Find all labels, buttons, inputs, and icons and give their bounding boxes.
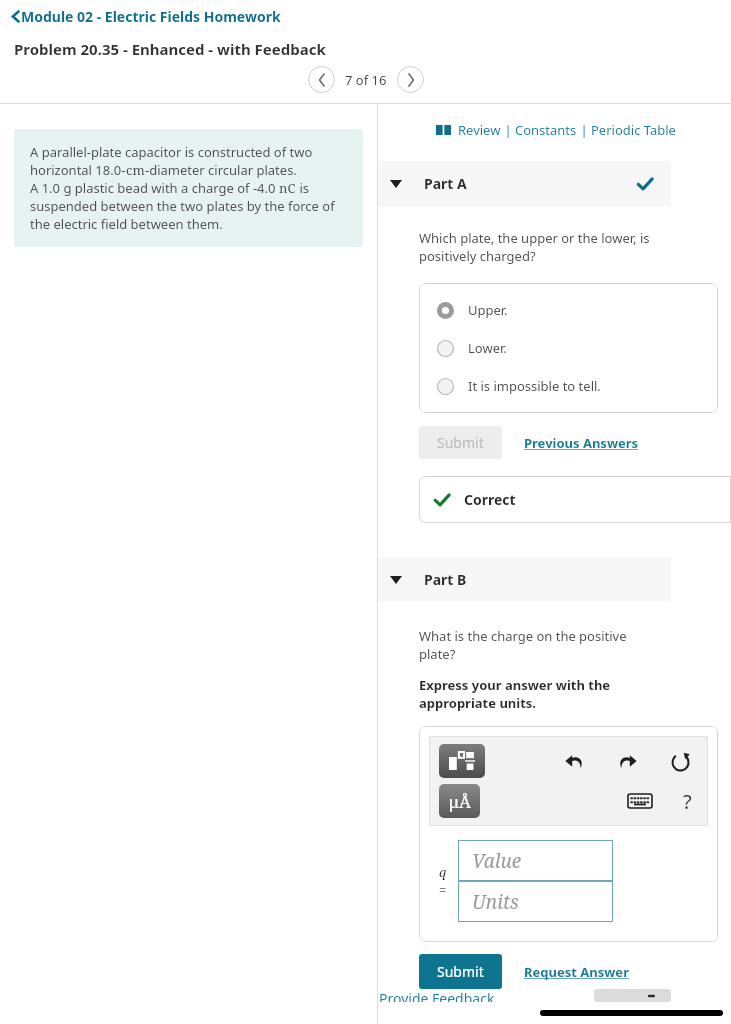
staticText: Part A (424, 174, 467, 193)
staticText: μÅ (449, 790, 471, 813)
button[interactable]: Module 02 - Electric Fields Homework (10, 7, 281, 26)
button[interactable]: Constants (515, 121, 577, 139)
button[interactable]: ? (683, 788, 692, 815)
other: Review (436, 124, 451, 136)
staticText: Constants (515, 121, 577, 139)
staticText: | (577, 121, 591, 139)
staticText: Express your answer with the (419, 676, 611, 694)
button[interactable]: Part A (378, 161, 671, 206)
staticText: = (439, 881, 447, 899)
button[interactable]: Previous problem (308, 66, 335, 93)
staticText: Module 02 - Electric Fields Homework (21, 7, 281, 26)
staticText: Review (458, 121, 501, 139)
button[interactable]: Units (458, 881, 613, 922)
button[interactable]: Request Answer (524, 963, 629, 981)
button[interactable]: Reset (668, 749, 692, 773)
button[interactable]: Redo (616, 750, 638, 772)
staticText: Correct (464, 490, 516, 509)
button[interactable]: Submit (419, 426, 502, 459)
staticText: Units (472, 889, 519, 915)
staticText: positively charged? (419, 247, 536, 265)
staticText: It is impossible to tell. (468, 377, 601, 395)
button[interactable]: Part B (378, 557, 671, 602)
staticText: is (296, 179, 309, 197)
staticText: Provide Feedback (379, 989, 495, 1002)
button[interactable]: Keyboard (627, 792, 653, 810)
button[interactable]: Next problem (397, 66, 424, 93)
button[interactable]: Periodic Table (591, 121, 676, 139)
button[interactable]: Review (458, 121, 501, 139)
button[interactable]: Upper. (419, 297, 718, 323)
staticText: 7 of 16 (345, 71, 387, 89)
staticText: the electric field between them. (30, 215, 223, 233)
staticText: cm (126, 161, 145, 179)
staticText: horizontal 18.0- (30, 161, 126, 179)
button[interactable]: Value (458, 840, 613, 881)
button[interactable]: Submit (419, 954, 502, 989)
staticText: Value (472, 848, 522, 874)
button[interactable]: Undo (564, 750, 586, 772)
staticText: nC (279, 179, 296, 197)
staticText: appropriate units. (419, 694, 536, 712)
staticText: Submit (437, 433, 484, 452)
staticText: A 1.0 g plastic bead with a charge of -4… (30, 179, 279, 197)
button[interactable]: It is impossible to tell. (419, 373, 718, 399)
staticText: Previous Answers (524, 434, 639, 452)
button[interactable]: Provide Feedback (379, 989, 495, 1002)
staticText: Upper. (468, 301, 508, 319)
staticText: suspended between the two plates by the … (30, 197, 335, 215)
staticText: q (439, 863, 447, 881)
staticText: Lower. (468, 339, 507, 357)
staticText: | (501, 121, 515, 139)
staticText: A parallel-plate capacitor is constructe… (30, 143, 313, 161)
staticText: Periodic Table (591, 121, 676, 139)
staticText: Problem 20.35 - Enhanced - with Feedback (14, 39, 326, 59)
button[interactable]: Lower. (419, 335, 718, 361)
staticText: Part B (424, 570, 467, 589)
button[interactable]: Next (594, 989, 671, 1002)
staticText: plate? (419, 645, 456, 663)
button[interactable]: Math template (439, 744, 485, 778)
staticText: What is the charge on the positive (419, 627, 627, 645)
staticText: Submit (437, 962, 484, 981)
button[interactable]: Previous Answers (524, 434, 639, 452)
staticText: Request Answer (524, 963, 629, 981)
staticText: Which plate, the upper or the lower, is (419, 229, 650, 247)
staticText: -diameter circular plates. (145, 161, 297, 179)
button[interactable]: Units (439, 784, 480, 818)
